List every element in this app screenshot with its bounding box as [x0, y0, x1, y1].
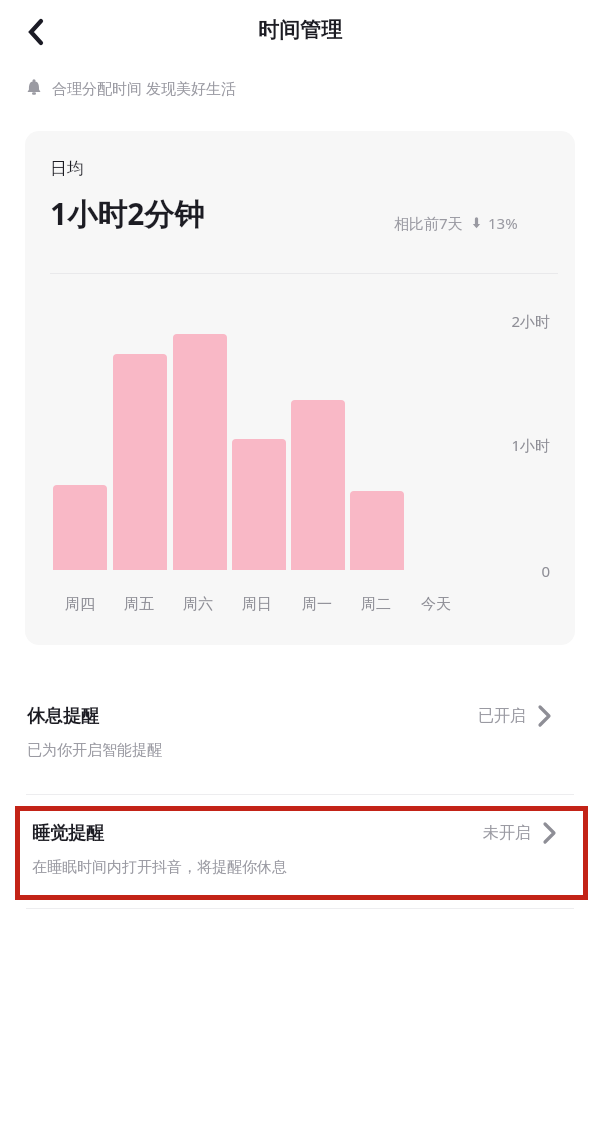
staticText: 1小时2分钟 — [50, 193, 205, 234]
staticText: 0 — [430, 561, 550, 581]
button[interactable]: 睡觉提醒 — [20, 811, 583, 895]
staticText: 今天 — [406, 595, 466, 614]
staticText: 已开启 — [478, 706, 526, 726]
staticText: 周五 — [109, 595, 169, 614]
staticText: 在睡眠时间内打开抖音，将提醒你休息 — [32, 858, 287, 877]
staticText: 休息提醒 — [27, 705, 99, 728]
staticText: 睡觉提醒 — [32, 822, 104, 845]
staticText: 时间管理 — [258, 17, 342, 43]
staticText: 周二 — [346, 595, 406, 614]
button[interactable]: 休息提醒 — [0, 690, 600, 778]
staticText: 相比前7天 — [394, 213, 463, 233]
staticText: 周一 — [287, 595, 347, 614]
staticText: 已为你开启智能提醒 — [27, 741, 162, 760]
staticText: 周四 — [50, 595, 110, 614]
button[interactable]: Back — [12, 8, 60, 56]
staticText: 2小时 — [430, 311, 550, 331]
staticText: 周六 — [168, 595, 228, 614]
staticText: 1小时 — [430, 435, 550, 455]
staticText: 合理分配时间 发现美好生活 — [52, 78, 236, 98]
staticText: 13% — [488, 213, 518, 233]
staticText: 未开启 — [483, 823, 531, 843]
staticText: 日均 — [50, 158, 84, 179]
staticText: 周日 — [227, 595, 287, 614]
